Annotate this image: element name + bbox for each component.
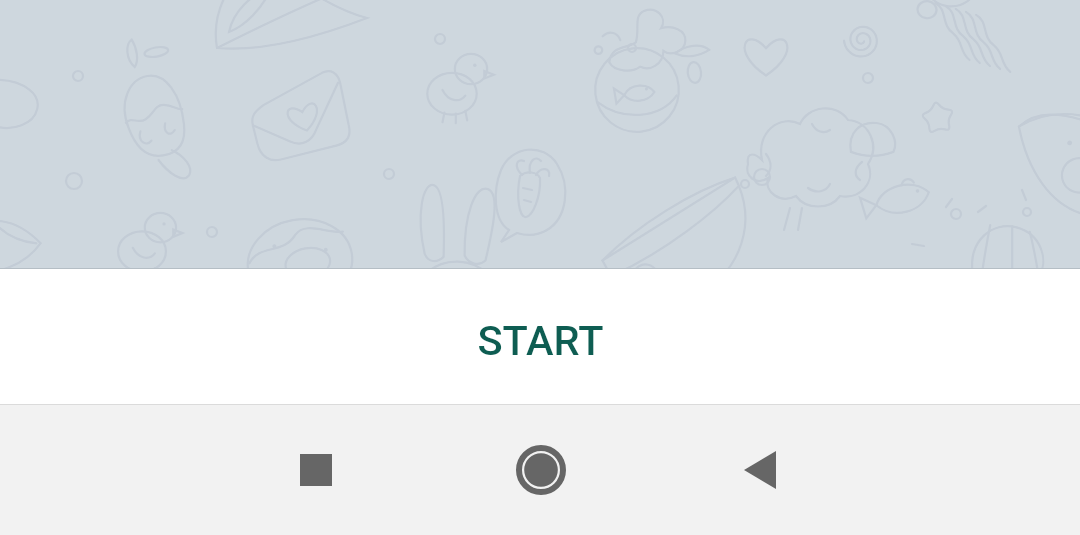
button[interactable]: Back [727,437,793,503]
staticText: START [477,316,604,365]
button[interactable]: Recent apps [283,437,349,503]
button[interactable]: START [0,269,1080,404]
button[interactable]: Home [508,437,574,503]
